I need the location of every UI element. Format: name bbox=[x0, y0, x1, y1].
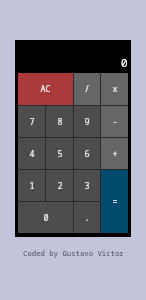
staticText: / bbox=[84, 83, 90, 95]
staticText: - bbox=[112, 116, 118, 128]
staticText: 1 bbox=[29, 180, 35, 192]
staticText: 5 bbox=[57, 148, 63, 160]
staticText: 6 bbox=[84, 148, 90, 160]
staticText: Coded by Gustavo Victor bbox=[23, 248, 124, 258]
button[interactable]: 3 bbox=[74, 170, 100, 201]
staticText: 8 bbox=[57, 116, 63, 128]
staticText: = bbox=[112, 196, 118, 208]
staticText: AC bbox=[40, 83, 51, 95]
button[interactable]: 6 bbox=[74, 138, 100, 169]
staticText: 2 bbox=[57, 180, 63, 192]
staticText: 7 bbox=[29, 116, 35, 128]
button[interactable]: AC bbox=[18, 73, 73, 105]
button[interactable]: 0 bbox=[18, 202, 73, 233]
staticText: . bbox=[84, 212, 90, 224]
button[interactable]: 2 bbox=[46, 170, 73, 201]
button[interactable]: 4 bbox=[18, 138, 45, 169]
button[interactable]: x bbox=[101, 73, 128, 105]
staticText: 3 bbox=[84, 180, 90, 192]
button[interactable]: 9 bbox=[74, 106, 100, 137]
staticText: 0 bbox=[121, 55, 128, 70]
staticText: + bbox=[112, 148, 118, 160]
button[interactable]: 5 bbox=[46, 138, 73, 169]
staticText: x bbox=[112, 83, 118, 95]
button[interactable]: 1 bbox=[18, 170, 45, 201]
button[interactable]: . bbox=[74, 202, 100, 233]
button[interactable]: - bbox=[101, 106, 128, 137]
button[interactable]: / bbox=[74, 73, 100, 105]
staticText: 0 bbox=[43, 212, 49, 224]
button[interactable]: = bbox=[101, 170, 128, 233]
button[interactable]: + bbox=[101, 138, 128, 169]
staticText: 9 bbox=[84, 116, 90, 128]
button[interactable]: 7 bbox=[18, 106, 45, 137]
button[interactable]: 8 bbox=[46, 106, 73, 137]
staticText: 4 bbox=[29, 148, 35, 160]
